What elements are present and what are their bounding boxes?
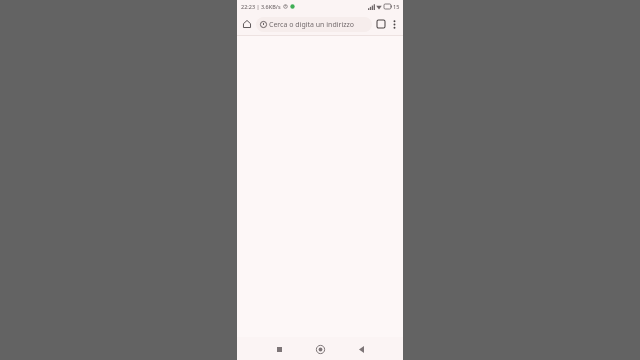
button[interactable]: Cerca o digita un indirizzo — [256, 17, 372, 32]
button[interactable]: Recent apps — [271, 341, 287, 357]
button[interactable]: More options — [388, 18, 400, 30]
staticText: 15 — [393, 3, 400, 10]
button[interactable]: Home — [240, 17, 254, 31]
button[interactable]: Back — [353, 341, 369, 357]
staticText: 22:23 | 3.6KB/s — [241, 3, 281, 10]
button[interactable]: Home — [312, 341, 328, 357]
staticText: Cerca o digita un indirizzo — [269, 20, 355, 30]
button[interactable]: Tabs — [374, 17, 388, 31]
